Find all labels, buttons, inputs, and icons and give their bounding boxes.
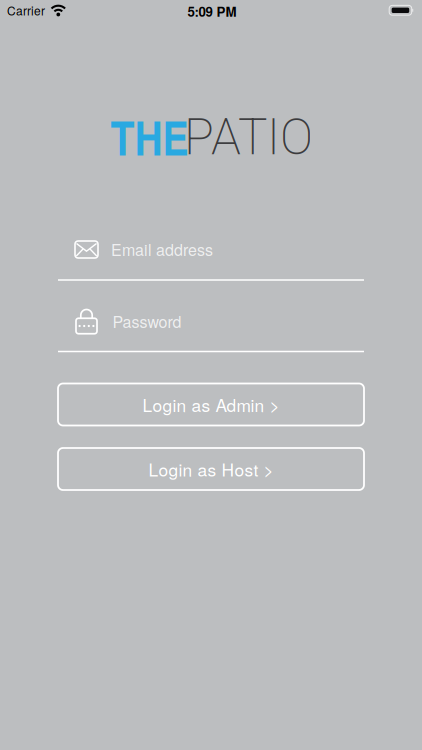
- staticText: PATIO: [184, 108, 313, 166]
- staticText: Carrier: [7, 2, 45, 19]
- button[interactable]: Email address: [58, 230, 364, 282]
- button[interactable]: Login as Host >: [58, 448, 364, 490]
- staticText: Login as Admin >: [142, 392, 279, 417]
- button[interactable]: Password: [58, 300, 364, 352]
- staticText: Login as Host >: [148, 457, 273, 481]
- staticText: Email address: [111, 238, 213, 260]
- button[interactable]: Login as Admin >: [58, 383, 364, 425]
- staticText: 5:09 PM: [187, 2, 236, 20]
- staticText: THE: [110, 102, 188, 170]
- staticText: Password: [112, 310, 181, 332]
